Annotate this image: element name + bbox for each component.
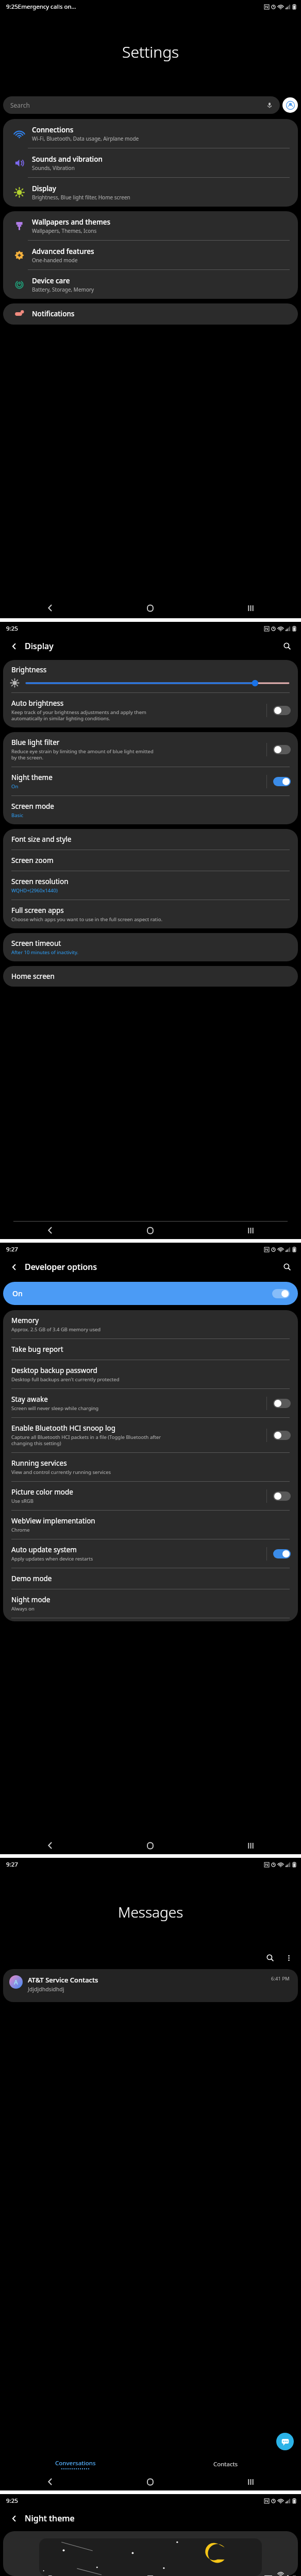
button[interactable]: Home [100,598,200,618]
button[interactable] [273,1399,291,1408]
button[interactable]: Notifications [3,303,298,325]
button[interactable]: Stay awake [3,1389,298,1417]
button[interactable]: Picture color mode [3,1482,298,1510]
button[interactable]: Blue light filter [3,732,298,767]
button[interactable]: Navigate up [6,1259,22,1275]
button[interactable] [26,680,289,687]
button[interactable]: Enable Bluetooth HCI snoop log [3,1418,298,1452]
button[interactable]: Home screen [3,966,298,987]
button[interactable]: Navigate up [6,2511,22,2526]
staticText: Memory [11,1316,39,1325]
staticText: Night mode [11,1595,51,1604]
button[interactable]: Font size and style [3,829,298,850]
button[interactable]: New conversation [276,2433,294,2450]
button[interactable] [273,777,291,786]
staticText: Conversations [55,2459,96,2467]
button[interactable]: Back [0,1222,100,1239]
button[interactable] [272,1289,290,1298]
button[interactable]: Recents [200,598,301,618]
button[interactable] [273,1431,291,1440]
button[interactable]: Screen zoom [3,850,298,871]
staticText: Screen timeout [11,939,61,948]
button[interactable]: Back [0,2473,100,2490]
staticText: Messages [118,1902,183,1922]
staticText: Night theme [25,2513,75,2524]
button[interactable]: Contacts [150,2455,301,2473]
button[interactable] [273,745,291,754]
button[interactable]: Recents [200,2473,301,2490]
button[interactable]: Running services [3,1453,298,1481]
staticText: Brightness, Blue light filter, Home scre… [32,194,130,201]
staticText: Enable Bluetooth HCI snoop log [11,1423,116,1433]
button[interactable]: Wallpapers and themes [3,211,298,240]
staticText: Display [32,184,56,193]
staticText: Always on [11,1605,35,1612]
staticText: Wallpapers and themes [32,217,110,227]
button[interactable]: Back [0,598,100,618]
button[interactable]: Full screen apps [3,900,298,928]
button[interactable]: Search [279,638,295,654]
button[interactable]: Sounds and vibration [3,148,298,177]
button[interactable]: Search [279,1259,295,1275]
button[interactable]: Connections [3,119,298,148]
button[interactable] [273,1549,291,1558]
staticText: Wi-Fi, Bluetooth, Data usage, Airplane m… [32,135,139,142]
staticText: Stay awake [11,1395,48,1404]
staticText: Notifications [32,309,75,318]
button[interactable]: Conversations [0,2455,150,2473]
button[interactable]: More options [281,1951,296,1965]
button[interactable]: Night theme [3,767,298,795]
staticText: Settings [122,41,179,62]
button[interactable]: Display [3,178,298,207]
button[interactable]: Night mode [3,1589,298,1618]
staticText: Font size and style [11,835,72,844]
staticText: Battery, Storage, Memory [32,286,94,293]
staticText: Search [10,101,30,109]
button[interactable]: Demo mode [3,1568,298,1589]
button[interactable]: Search [263,1951,277,1965]
button[interactable]: Auto brightness [3,693,298,727]
staticText: Picture color mode [11,1487,73,1497]
staticText: Sounds, Vibration [32,164,75,172]
button[interactable]: Navigate up [6,638,22,654]
staticText: WQHD+(2960x1440) [11,887,58,894]
staticText: Auto update system [11,1545,77,1554]
staticText: Device care [32,276,70,285]
staticText: Reduce eye strain by limiting the amount… [11,748,154,761]
button[interactable]: Take bug report [3,1339,298,1360]
staticText: Apply updates when device restarts [11,1555,93,1562]
staticText: Home screen [11,972,55,981]
button[interactable]: Screen mode [3,796,298,824]
button[interactable] [273,706,291,715]
button[interactable]: Home [100,1222,200,1239]
button[interactable]: Auto update system [3,1539,298,1568]
button[interactable]: Recents [200,1837,301,1854]
button[interactable]: On [3,1282,298,1305]
button[interactable]: Search [3,96,280,114]
staticText: Blue light filter [11,738,60,747]
button[interactable]: Recents [200,1222,301,1239]
staticText: WebView implementation [11,1516,95,1526]
staticText: Chrome [11,1527,30,1533]
button[interactable]: Memory [3,1310,298,1338]
staticText: Screen zoom [11,856,54,865]
button[interactable]: Device care [3,270,298,299]
staticText: Display [25,640,54,652]
staticText: Screen mode [11,802,54,811]
staticText: Brightness [11,665,47,674]
staticText: Full screen apps [11,906,64,915]
staticText: One-handed mode [32,257,78,264]
button[interactable]: WebView implementation [3,1511,298,1539]
button[interactable]: Account [282,97,298,113]
button[interactable]: Desktop backup password [3,1360,298,1388]
button[interactable]: Home [100,1837,200,1854]
staticText: 9:27 [6,1245,18,1253]
button[interactable] [273,1492,291,1501]
button[interactable]: Home [100,2473,200,2490]
button[interactable]: Back [0,1837,100,1854]
button[interactable]: Screen resolution [3,871,298,900]
button[interactable]: Advanced features [3,241,298,269]
button[interactable]: A [3,1969,298,2002]
staticText: Use sRGB [11,1498,34,1504]
button[interactable]: Screen timeout [3,933,298,961]
